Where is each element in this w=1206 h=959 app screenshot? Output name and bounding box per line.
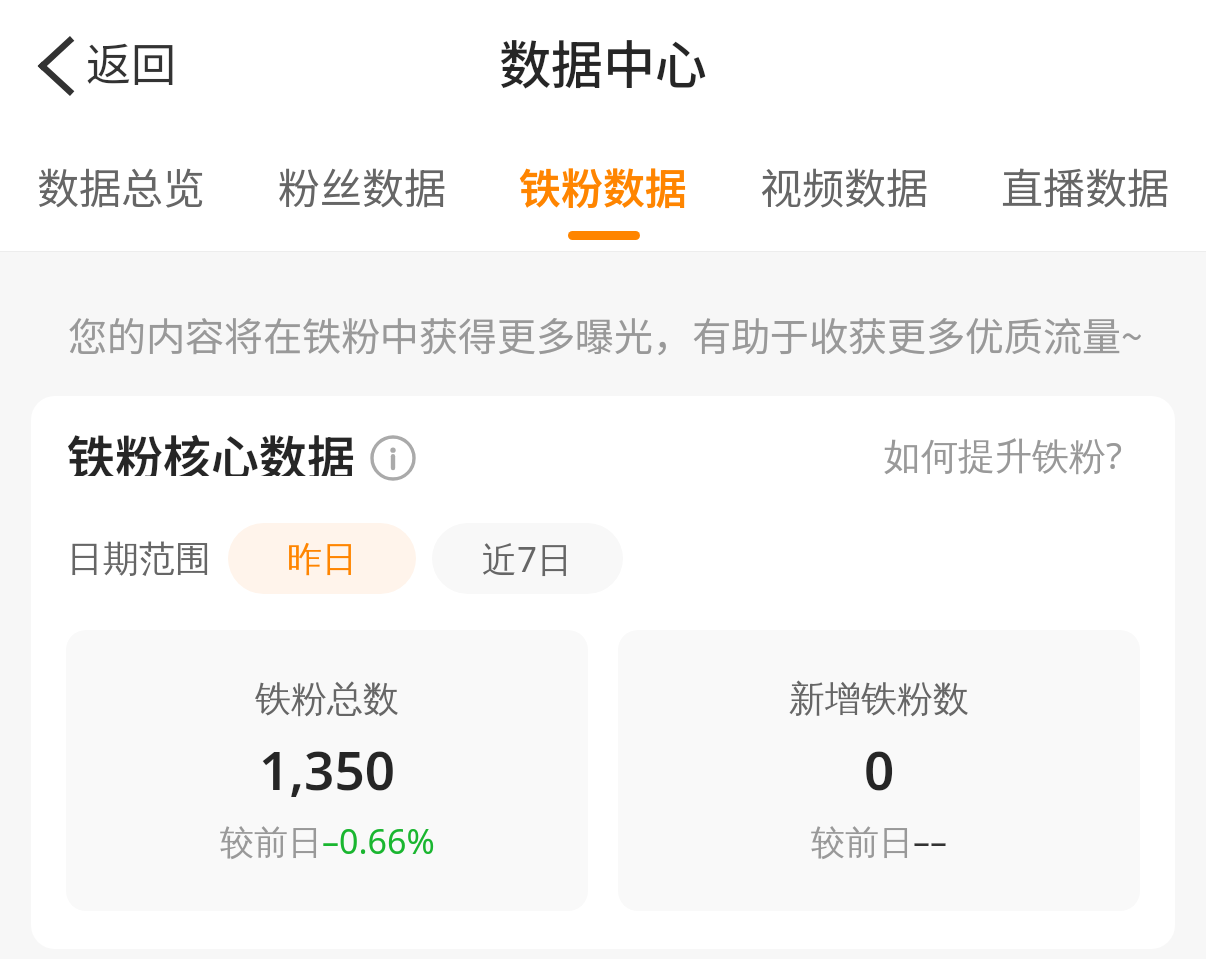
button[interactable]: 铁粉数据 <box>483 129 724 252</box>
staticText: 日期范围 <box>67 536 211 581</box>
button[interactable]: 新增铁粉数 <box>618 630 1140 911</box>
staticText: 视频数据 <box>760 155 929 216</box>
button[interactable]: 数据总览 <box>0 129 242 252</box>
staticText: 您的内容将在铁粉中获得更多曝光，有助于收获更多优质流量~ <box>68 306 1143 362</box>
button[interactable]: 视频数据 <box>724 129 965 252</box>
staticText: 昨日 <box>287 537 357 581</box>
button[interactable]: 说明 <box>370 435 416 481</box>
staticText: 粉丝数据 <box>278 155 447 216</box>
button[interactable]: 昨日 <box>228 523 416 594</box>
button[interactable]: 粉丝数据 <box>242 129 483 252</box>
button[interactable]: 近7日 <box>432 523 623 594</box>
staticText: 较前日–0.66% <box>220 818 435 864</box>
staticText: 1,350 <box>259 733 396 805</box>
staticText: 近7日 <box>482 535 573 583</box>
staticText: 较前日–– <box>811 818 947 864</box>
button[interactable]: 返回 <box>33 22 183 107</box>
button[interactable]: 如何提升铁粉? <box>884 433 1123 484</box>
staticText: 铁粉数据 <box>519 155 688 216</box>
staticText: 新增铁粉数 <box>789 676 969 721</box>
staticText: 0 <box>864 733 895 805</box>
staticText: 铁粉核心数据 <box>67 420 356 476</box>
button[interactable]: 直播数据 <box>965 129 1206 252</box>
staticText: 直播数据 <box>1001 155 1170 216</box>
staticText: 返回 <box>86 29 177 94</box>
staticText: 数据总览 <box>37 155 206 216</box>
staticText: 铁粉总数 <box>255 676 399 721</box>
button[interactable]: 铁粉总数 <box>66 630 588 911</box>
staticText: 数据中心 <box>499 24 708 99</box>
